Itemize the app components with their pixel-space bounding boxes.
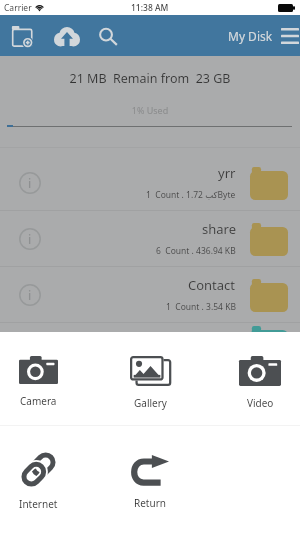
button[interactable]: Gallery (112, 356, 188, 410)
staticText: Return (134, 496, 166, 510)
staticText: 1 Count . 3.54 KB (166, 301, 236, 313)
staticText: 6 Count . 436.94 KB (156, 245, 236, 257)
staticText: Contact (188, 276, 236, 294)
staticText: i (28, 175, 32, 191)
other: Info (19, 228, 41, 250)
staticText: Internet (19, 497, 58, 511)
staticText: Camera (20, 394, 57, 408)
button[interactable]: Menu (272, 15, 300, 56)
other: Info (19, 172, 41, 194)
button[interactable]: New folder (0, 15, 44, 56)
staticText: My Disk (228, 28, 273, 44)
other: Info (19, 284, 41, 306)
staticText: share (202, 220, 236, 238)
staticText: 11:38 AM (131, 2, 169, 14)
button[interactable]: Info (0, 267, 300, 323)
staticText: yrr (218, 164, 236, 182)
staticText: Carrier (4, 2, 32, 14)
staticText: i (28, 287, 32, 303)
staticText: 1 Count . 1.72 كبByte (146, 189, 236, 201)
button[interactable]: My Disk (224, 15, 277, 56)
staticText: Gallery (134, 396, 167, 410)
button[interactable]: Info (0, 211, 300, 267)
button[interactable]: Video (222, 356, 298, 410)
button[interactable]: Search (89, 15, 129, 56)
staticText: 1% Used (0, 104, 300, 116)
button[interactable]: Info (0, 155, 300, 211)
button[interactable]: Internet (0, 452, 76, 511)
button[interactable]: Upload (44, 15, 89, 56)
staticText: Video (247, 396, 274, 410)
button[interactable]: Return (112, 455, 188, 510)
staticText: i (28, 231, 32, 247)
button[interactable]: Camera (0, 356, 76, 408)
staticText: 21 MB Remain from 23 GB (0, 70, 300, 87)
